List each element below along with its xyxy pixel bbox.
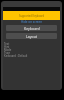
button[interactable]: Hide on screen	[3, 20, 60, 23]
staticText: Keyboard : Default	[4, 54, 28, 57]
button[interactable]: Layout	[6, 33, 57, 39]
staticText: Text	[4, 42, 10, 45]
button[interactable]: Keyboard	[6, 25, 57, 31]
staticText: Hide on screen	[21, 20, 43, 23]
staticText: Hint	[4, 45, 10, 48]
staticText: Type	[4, 51, 10, 54]
staticText: Layout	[26, 34, 38, 39]
button[interactable]: Supported Keyboard	[3, 11, 60, 20]
staticText: Supported Keyboard	[19, 14, 45, 18]
staticText: Mode	[4, 48, 12, 51]
staticText: Keyboard	[24, 26, 40, 31]
